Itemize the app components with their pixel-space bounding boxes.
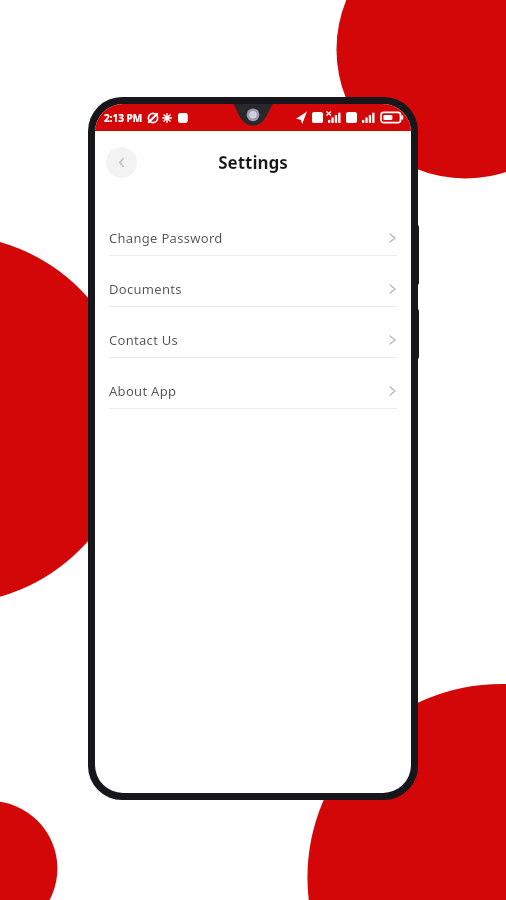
button[interactable]: Contact Us	[109, 323, 397, 374]
staticText: Documents	[109, 280, 182, 298]
staticText: Contact Us	[109, 331, 179, 349]
button[interactable]: Documents	[109, 272, 397, 323]
staticText: 2:13 PM	[104, 111, 143, 125]
button[interactable]: Change Password	[109, 221, 397, 272]
button[interactable]: About App	[109, 374, 397, 425]
staticText: Change Password	[109, 229, 223, 247]
staticText: Settings	[218, 151, 288, 174]
button[interactable]: Back	[106, 147, 137, 178]
staticText: About App	[109, 382, 177, 400]
